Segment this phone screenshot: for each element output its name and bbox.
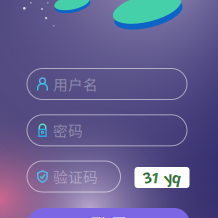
staticText: 1 [151,168,159,187]
staticText: 验证码 [53,166,98,187]
button[interactable]: 登 录 [28,208,190,218]
button[interactable]: 密码 [27,115,187,146]
button[interactable]: 用户名 [27,68,187,99]
staticText: 密码 [53,120,83,141]
button[interactable]: 验证码 [27,161,120,192]
button[interactable]: Refresh verification code [134,167,189,188]
staticText: q [172,168,181,187]
staticText: 用户名 [53,73,98,95]
staticText: 登 录 [90,211,128,218]
staticText: y [164,168,172,187]
staticText: 3 [143,168,151,187]
